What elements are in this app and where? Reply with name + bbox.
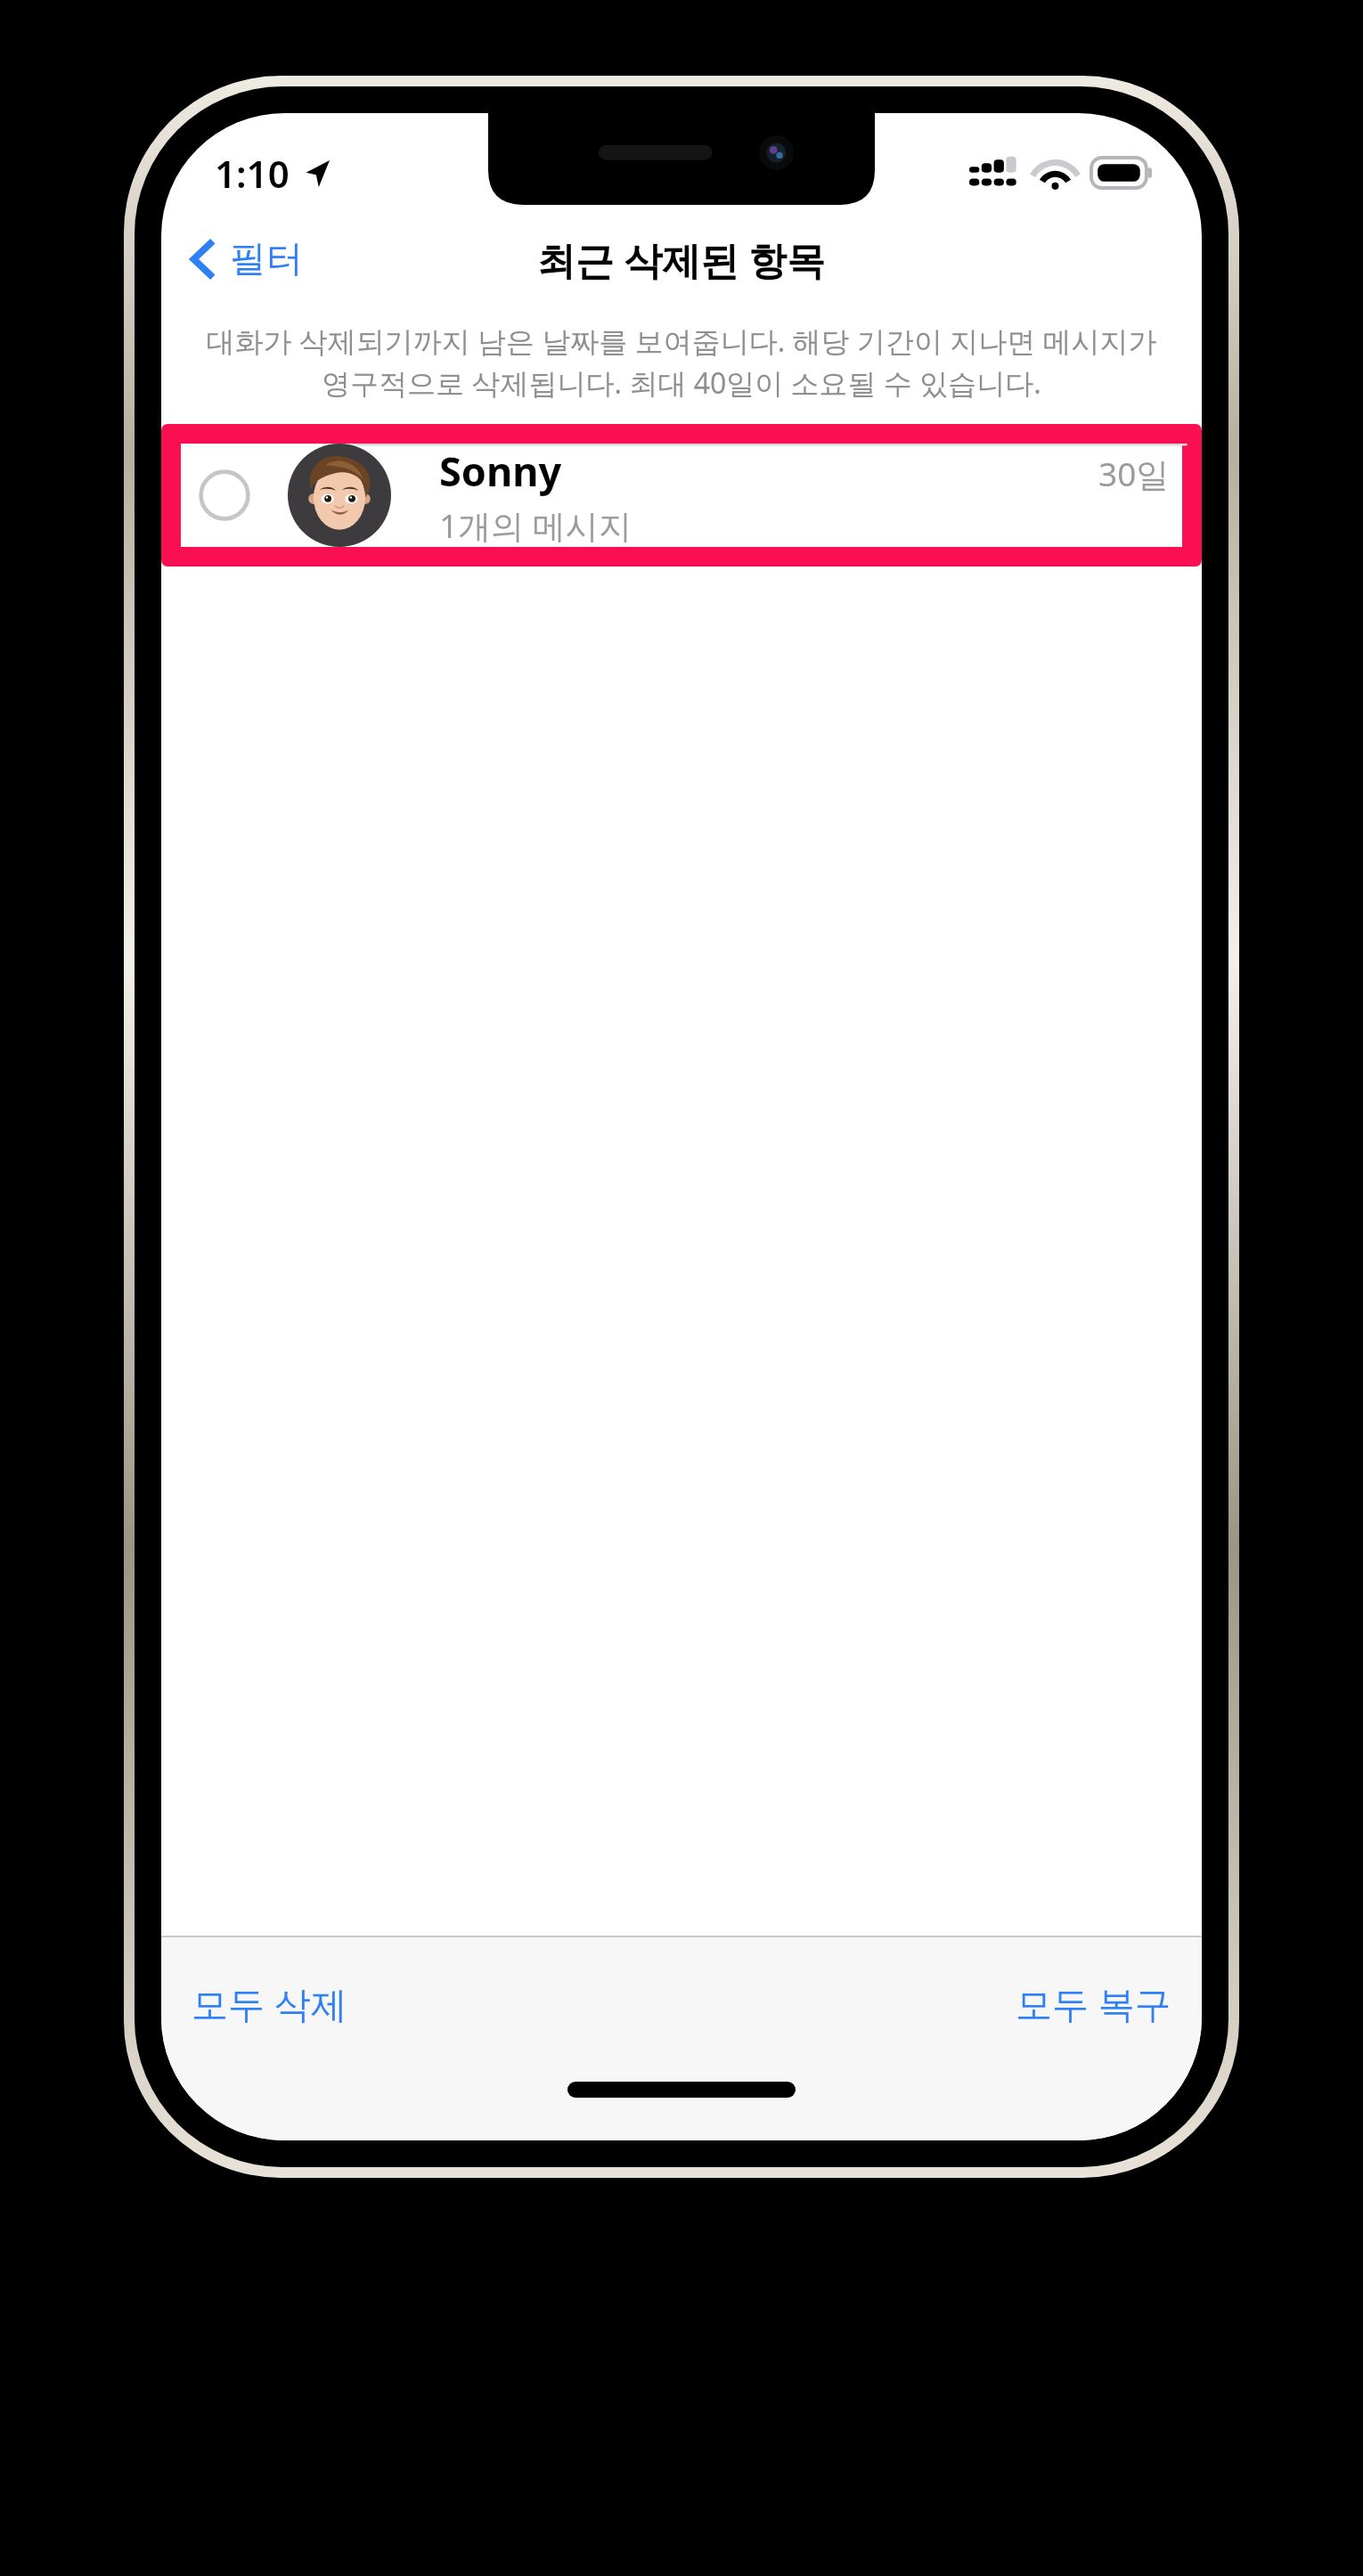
staticText: 최근 삭제된 항목 (537, 233, 826, 286)
staticText: Sonny (439, 444, 562, 498)
staticText: 30일 (1098, 451, 1170, 496)
staticText: 모두 삭제 (192, 1978, 347, 2028)
button[interactable]: 뒤로, 필터 (161, 225, 321, 293)
other: 선택 (199, 469, 250, 521)
staticText: 1:10 (215, 148, 290, 199)
staticText: 대화가 삭제되기까지 남은 날짜를 보여줍니다. 해당 기간이 지나면 메시지가… (192, 322, 1171, 403)
button[interactable]: 선택 (181, 444, 1182, 547)
button[interactable]: 모두 복구 (985, 1955, 1202, 2051)
staticText: 필터 (230, 236, 303, 282)
staticText: 모두 복구 (1016, 1978, 1171, 2028)
staticText: 1개의 메시지 (439, 502, 632, 547)
button[interactable]: 모두 삭제 (161, 1955, 378, 2051)
